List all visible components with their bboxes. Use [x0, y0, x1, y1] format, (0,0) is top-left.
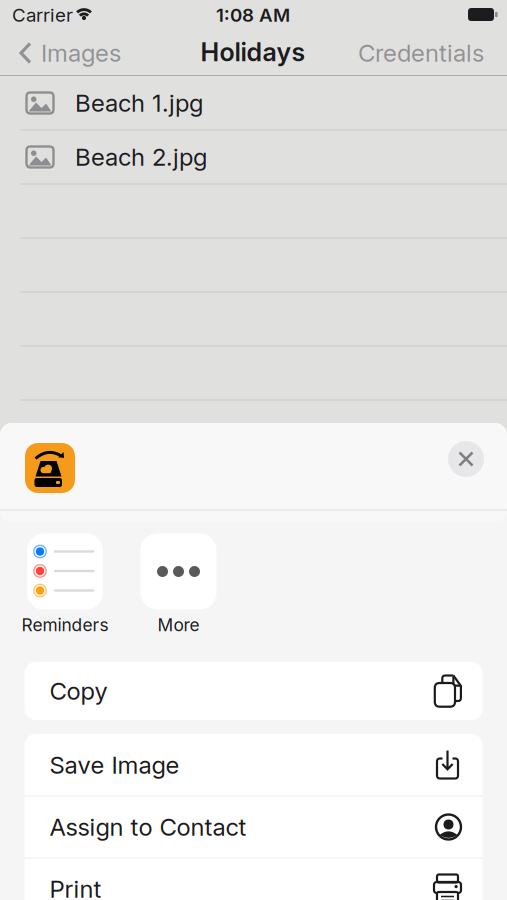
button[interactable]: Assign to Contact	[24, 796, 482, 858]
staticText: Print	[49, 875, 101, 900]
button[interactable]: Close	[448, 441, 484, 477]
button[interactable]: Copy	[24, 662, 482, 720]
button[interactable]: Print	[24, 858, 482, 900]
button[interactable]: Images	[19, 39, 121, 67]
staticText: Reminders	[21, 615, 108, 635]
staticText: Carrier	[12, 4, 73, 26]
staticText: Holidays	[200, 37, 305, 67]
staticText: Credentials	[358, 39, 484, 67]
staticText: Copy	[49, 677, 107, 705]
button[interactable]: Credentials	[358, 39, 484, 67]
staticText: Save Image	[49, 751, 179, 779]
staticText: Beach 2.jpg	[75, 143, 207, 171]
button[interactable]: Beach 2.jpg	[0, 130, 507, 184]
staticText: More	[157, 615, 199, 635]
button[interactable]: Reminders	[13, 533, 117, 635]
staticText: Beach 1.jpg	[75, 89, 203, 117]
staticText: Images	[41, 39, 121, 67]
button[interactable]: More	[126, 533, 230, 635]
staticText: Assign to Contact	[49, 813, 246, 841]
button[interactable]: Save Image	[24, 734, 482, 796]
staticText: 1:08 AM	[216, 4, 290, 26]
button[interactable]: Beach 1.jpg	[0, 76, 507, 130]
